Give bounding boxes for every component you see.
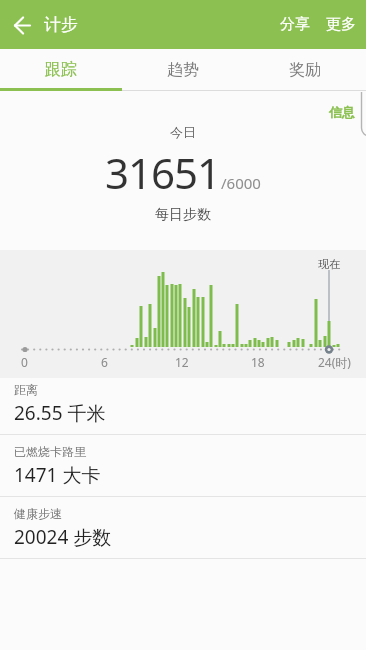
staticText: 奖励: [289, 60, 321, 80]
staticText: 26.55 千米: [14, 400, 106, 426]
staticText: 每日步数: [155, 206, 211, 224]
staticText: 12: [175, 354, 189, 370]
staticText: 分享: [280, 15, 310, 34]
staticText: 0: [21, 354, 28, 370]
staticText: 6: [101, 354, 108, 370]
staticText: 18: [251, 354, 265, 370]
button[interactable]: 跟踪: [0, 49, 122, 91]
staticText: 1471 大卡: [14, 462, 101, 488]
staticText: 24(时): [318, 354, 351, 370]
staticText: 更多: [326, 15, 356, 34]
staticText: 计步: [44, 14, 78, 35]
staticText: 31651: [105, 144, 221, 201]
button[interactable]: 健康步速: [0, 497, 366, 559]
button[interactable]: 趋势: [122, 49, 244, 91]
staticText: 今日: [170, 124, 196, 140]
staticText: 跟踪: [45, 60, 77, 80]
staticText: 信息: [329, 104, 355, 120]
staticText: 20024 步数: [14, 524, 112, 550]
button[interactable]: 信息: [329, 91, 366, 120]
button[interactable]: 距离: [0, 378, 366, 435]
button[interactable]: [0, 1, 44, 49]
button[interactable]: 更多: [326, 3, 356, 46]
staticText: 已燃烧卡路里: [14, 444, 86, 459]
staticText: /6000: [221, 173, 261, 193]
button[interactable]: 分享: [272, 3, 318, 46]
staticText: 现在: [318, 257, 340, 271]
staticText: 健康步速: [14, 506, 62, 521]
button[interactable]: 已燃烧卡路里: [0, 435, 366, 497]
staticText: 距离: [14, 382, 38, 397]
staticText: 趋势: [167, 60, 199, 80]
button[interactable]: 奖励: [244, 49, 366, 91]
